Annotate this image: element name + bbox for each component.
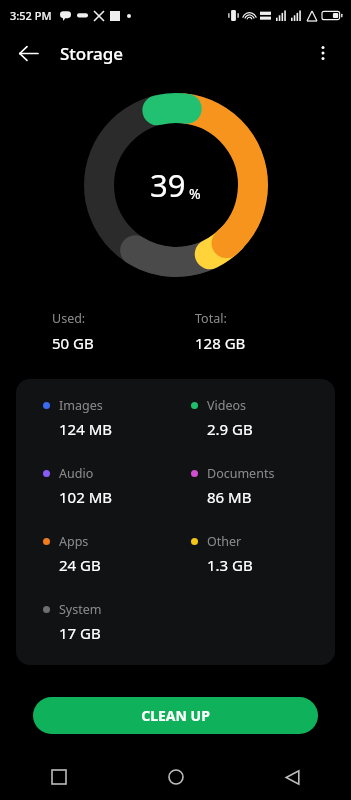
button[interactable]: Other — [191, 533, 335, 575]
staticText: 39 — [150, 164, 186, 206]
button[interactable]: Videos — [191, 397, 335, 439]
staticText: 17 GB — [59, 623, 101, 643]
staticText: Other — [207, 533, 242, 550]
button[interactable]: Home — [117, 754, 234, 800]
button[interactable]: System — [43, 601, 175, 643]
staticText: Total: — [195, 310, 227, 327]
staticText: Audio — [59, 465, 94, 482]
staticText: Videos — [207, 397, 247, 414]
button[interactable]: Back — [234, 754, 351, 800]
staticText: 86 MB — [207, 487, 252, 507]
staticText: % — [189, 184, 201, 203]
staticText: System — [59, 601, 102, 618]
button[interactable]: More options — [303, 33, 343, 73]
staticText: Documents — [207, 465, 275, 482]
button[interactable]: Images — [43, 397, 175, 439]
staticText: Images — [59, 397, 103, 414]
staticText: CLEAN UP — [141, 706, 210, 725]
staticText: 2.9 GB — [207, 419, 253, 439]
staticText: 1.3 GB — [207, 555, 253, 575]
staticText: 3:52 PM — [10, 8, 52, 23]
button[interactable]: Apps — [43, 533, 175, 575]
staticText: Used: — [52, 310, 86, 327]
button[interactable]: Audio — [43, 465, 175, 507]
staticText: 24 GB — [59, 555, 101, 575]
staticText: 128 GB — [195, 333, 246, 353]
staticText: 124 MB — [59, 419, 112, 439]
staticText: Apps — [59, 533, 89, 550]
button[interactable]: CLEAN UP — [33, 697, 318, 734]
button[interactable]: Back — [8, 33, 48, 73]
staticText: Storage — [60, 42, 124, 65]
button[interactable]: Documents — [191, 465, 335, 507]
button[interactable]: Recents — [0, 754, 117, 800]
staticText: 50 GB — [52, 333, 94, 353]
staticText: 102 MB — [59, 487, 112, 507]
